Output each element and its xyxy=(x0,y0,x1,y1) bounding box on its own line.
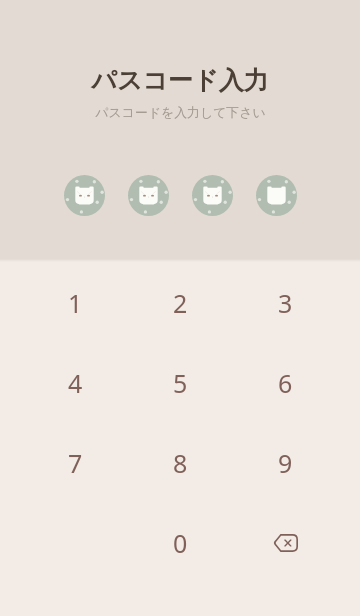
other: Delete last digit xyxy=(273,534,298,552)
staticText: 9 xyxy=(278,446,293,480)
staticText: パスコードを入力して下さい xyxy=(95,105,266,121)
staticText: 6 xyxy=(278,366,293,400)
button[interactable]: 1 xyxy=(23,263,128,343)
button[interactable]: 9 xyxy=(233,423,338,503)
staticText: 5 xyxy=(173,366,188,400)
button[interactable]: 6 xyxy=(233,343,338,423)
button[interactable]: Delete last digit xyxy=(233,503,338,583)
button[interactable]: 2 xyxy=(128,263,233,343)
button[interactable]: 0 xyxy=(128,503,233,583)
staticText: 2 xyxy=(173,286,188,320)
button[interactable]: 3 xyxy=(233,263,338,343)
staticText: 3 xyxy=(278,286,293,320)
button[interactable]: 8 xyxy=(128,423,233,503)
staticText: 7 xyxy=(68,446,83,480)
staticText: 4 xyxy=(68,366,83,400)
staticText: 8 xyxy=(173,446,188,480)
staticText: 0 xyxy=(173,526,188,560)
staticText: 1 xyxy=(68,286,83,320)
staticText: パスコード入力 xyxy=(91,65,269,96)
button[interactable]: 7 xyxy=(23,423,128,503)
button[interactable]: 5 xyxy=(128,343,233,423)
button[interactable]: 4 xyxy=(23,343,128,423)
